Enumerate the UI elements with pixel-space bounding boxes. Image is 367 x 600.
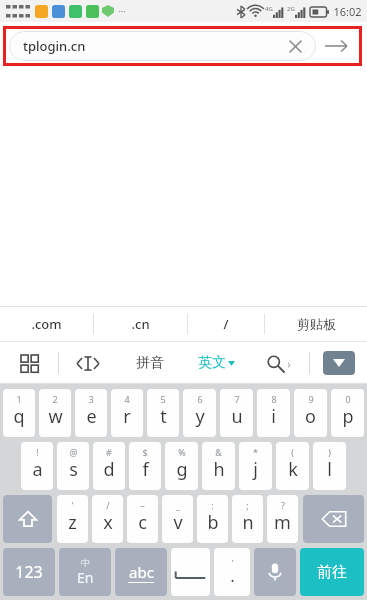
staticText: ··· [118, 5, 126, 17]
staticText: 2G [287, 5, 295, 13]
button[interactable]: _ [162, 495, 193, 543]
staticText: i [271, 404, 276, 429]
staticText: – [140, 499, 145, 511]
button[interactable]: $ [129, 442, 161, 490]
button[interactable]: Search [249, 342, 309, 384]
button[interactable]: 5 [147, 389, 179, 437]
button[interactable]: abc [115, 548, 167, 596]
staticText: e [86, 404, 97, 429]
staticText: 4G [265, 5, 273, 13]
button[interactable]: : [197, 495, 228, 543]
button[interactable]: 3 [75, 389, 107, 437]
button[interactable]: # [93, 442, 125, 490]
staticText: k [288, 457, 298, 482]
button[interactable]: ' [57, 495, 88, 543]
staticText: ( [291, 446, 294, 458]
staticText: : [211, 499, 214, 511]
staticText: ， [228, 552, 237, 563]
button[interactable]: / [188, 306, 264, 342]
button[interactable]: Clear [284, 35, 306, 57]
button[interactable]: 123 [3, 548, 55, 596]
staticText: * [253, 446, 258, 458]
staticText: ! [36, 446, 39, 458]
button[interactable]: Hide keyboard [323, 351, 355, 375]
staticText: q [13, 404, 25, 429]
staticText: w [48, 404, 63, 429]
button[interactable]: Go [316, 26, 356, 66]
staticText: abc [129, 562, 154, 582]
button[interactable]: ( [276, 442, 309, 490]
staticText: ) [328, 446, 331, 458]
button[interactable]: .com [0, 306, 93, 342]
staticText: d [103, 457, 115, 482]
button[interactable]: 4 [111, 389, 143, 437]
button[interactable]: 中 [59, 548, 111, 596]
staticText: 16:02 [333, 4, 362, 19]
button[interactable]: ? [267, 495, 298, 543]
staticText: 123 [15, 561, 43, 583]
staticText: p [342, 404, 354, 429]
staticText: .cn [131, 315, 150, 333]
staticText: n [242, 510, 254, 535]
button[interactable]: – [127, 495, 158, 543]
staticText: m [274, 510, 291, 535]
staticText: . [230, 564, 235, 587]
staticText: 2 [52, 393, 58, 405]
button[interactable]: ! [21, 442, 53, 490]
button[interactable]: / [92, 495, 123, 543]
button[interactable]: 0 [331, 389, 364, 437]
staticText: o [305, 404, 316, 429]
staticText: c [138, 510, 147, 535]
button[interactable]: * [239, 442, 272, 490]
staticText: tplogin.cn [23, 37, 86, 55]
button[interactable]: Space [171, 548, 210, 596]
button[interactable]: Shift [3, 495, 52, 543]
staticText: .com [31, 315, 62, 333]
button[interactable]: .cn [94, 306, 187, 342]
button[interactable]: tplogin.cn [9, 31, 316, 61]
button[interactable]: 1 [3, 389, 35, 437]
staticText: 9 [308, 393, 314, 405]
staticText: 1 [16, 393, 22, 405]
button[interactable]: 6 [183, 389, 216, 437]
button[interactable]: @ [57, 442, 89, 490]
staticText: j [253, 457, 258, 482]
button[interactable]: % [165, 442, 198, 490]
staticText: b [207, 510, 219, 535]
button[interactable]: Grid [0, 342, 58, 384]
staticText: s [69, 457, 78, 482]
staticText: ? [281, 499, 285, 511]
staticText: 剪贴板 [297, 316, 336, 332]
button[interactable]: 2 [39, 389, 71, 437]
staticText: & [215, 446, 222, 458]
button[interactable]: 剪贴板 [265, 306, 367, 342]
staticText: a [32, 457, 43, 482]
button[interactable]: ; [232, 495, 263, 543]
staticText: 4 [124, 393, 130, 405]
button[interactable]: 9 [294, 389, 327, 437]
button[interactable]: 7 [220, 389, 253, 437]
staticText: y [195, 404, 205, 429]
button[interactable]: 前往 [300, 548, 364, 596]
staticText: l [327, 457, 332, 482]
staticText: @ [69, 446, 78, 458]
button[interactable]: 英文 [183, 342, 249, 384]
staticText: ' [71, 499, 74, 511]
staticText: z [68, 510, 77, 535]
staticText: 5 [160, 393, 166, 405]
button[interactable]: 8 [257, 389, 290, 437]
staticText: h [213, 457, 225, 482]
staticText: # [106, 446, 112, 458]
staticText: 拼音 [136, 354, 164, 372]
button[interactable]: Cursor [59, 342, 117, 384]
button[interactable]: Backspace [303, 495, 364, 543]
staticText: x [103, 510, 113, 535]
button[interactable]: & [202, 442, 235, 490]
staticText: En [77, 568, 94, 587]
staticText: t [160, 404, 167, 429]
button[interactable]: ， [214, 548, 250, 596]
button[interactable]: ) [313, 442, 346, 490]
button[interactable]: Voice input [254, 548, 296, 596]
staticText: 3 [88, 393, 94, 405]
button[interactable]: 拼音 [117, 342, 183, 384]
